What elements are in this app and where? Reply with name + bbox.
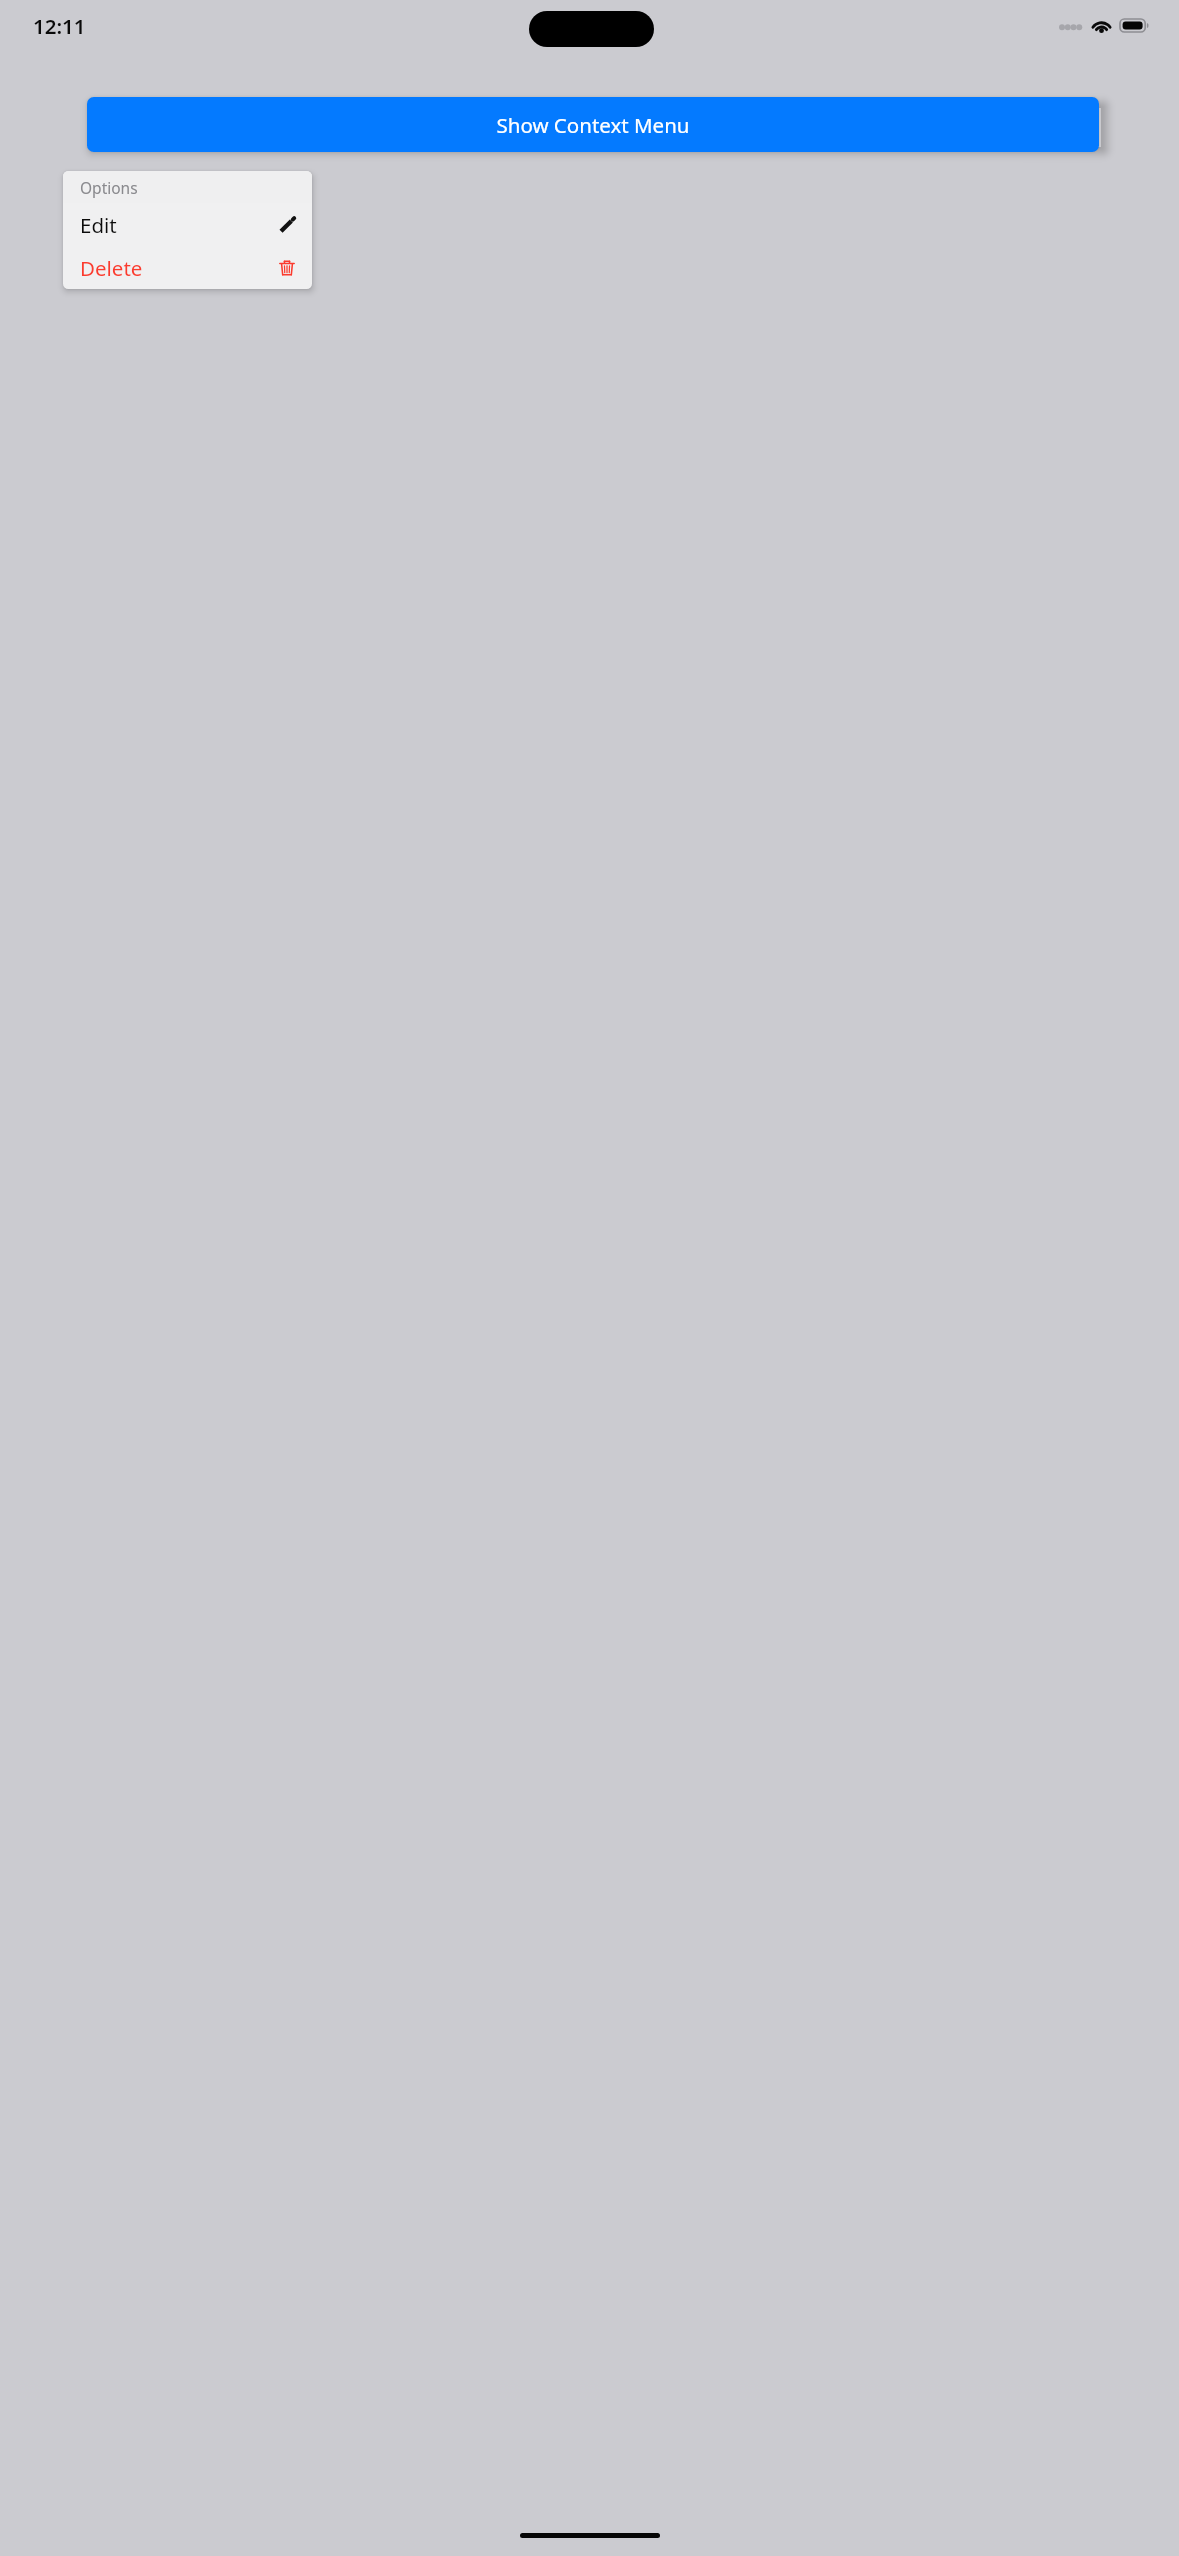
button[interactable]: Edit	[63, 203, 312, 246]
staticText: Show Context Menu	[496, 111, 690, 139]
button[interactable]: Delete	[63, 246, 312, 289]
button[interactable]: Show Context Menu	[87, 97, 1099, 152]
staticText: 12:11	[33, 12, 86, 40]
other: Delete	[278, 259, 296, 277]
staticText: Options	[80, 177, 138, 198]
staticText: Delete	[80, 254, 143, 282]
staticText: Edit	[80, 211, 117, 239]
other: Edit	[278, 216, 296, 234]
